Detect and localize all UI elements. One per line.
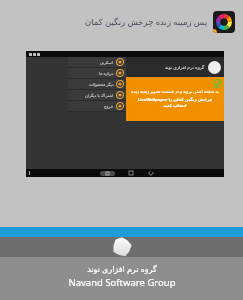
staticText: LiveWallpaper چرخش رنگین کمان را انتخاب … <box>131 97 219 109</box>
staticText: به صفحه اصلی بروید و در قسمت تصویر زمینه… <box>131 89 219 95</box>
button[interactable]: Recents <box>106 172 109 175</box>
button[interactable]: به صفحه اصلی بروید و در قسمت تصویر زمینه… <box>126 77 224 121</box>
button[interactable]: دیگر محصولات <box>68 79 126 89</box>
staticText: Navand Software Group <box>68 276 176 289</box>
button[interactable]: اشتراک با دیگران <box>68 90 126 100</box>
staticText: اشتراک با دیگران <box>85 93 114 98</box>
staticText: اسکرین <box>100 60 114 65</box>
button[interactable]: خروج <box>68 101 126 111</box>
staticText: گروه نرم افزاری نوند <box>165 64 205 70</box>
staticText: گروه نرم افزاری نوند <box>87 263 157 274</box>
button[interactable]: اسکرین <box>68 57 126 67</box>
button[interactable]: درباره ما <box>68 68 126 78</box>
button[interactable]: App icon <box>213 11 235 33</box>
button[interactable]: Back <box>149 171 153 175</box>
staticText: دیگر محصولات <box>89 82 114 87</box>
staticText: خروج <box>104 104 114 109</box>
button[interactable]: Home <box>129 171 133 175</box>
other: Done <box>213 79 222 88</box>
staticText: پس زمینه زنده چرخش رنگین کمان <box>84 16 207 28</box>
staticText: درباره ما <box>99 71 114 76</box>
